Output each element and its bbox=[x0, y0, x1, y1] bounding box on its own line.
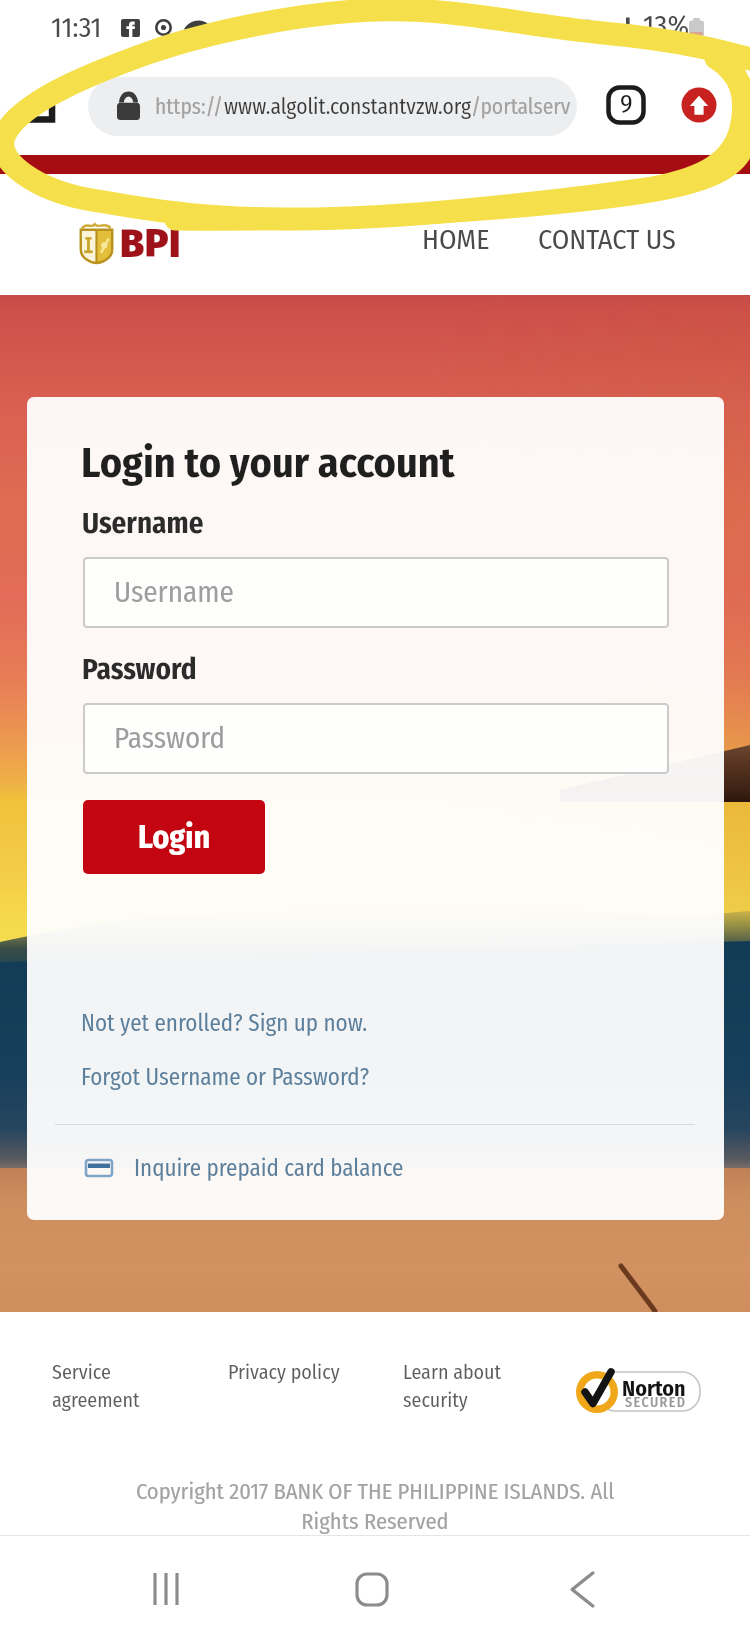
staticText: Username bbox=[114, 575, 234, 610]
button[interactable]: Forgot Username or Password? bbox=[81, 1063, 370, 1091]
button[interactable]: Recents bbox=[116, 1559, 216, 1619]
staticText: BPI bbox=[120, 221, 181, 268]
button[interactable]: Password bbox=[83, 703, 669, 774]
staticText: 13% bbox=[643, 9, 690, 44]
button[interactable]: Norton Secured bbox=[576, 1368, 702, 1416]
staticText: 11:31 bbox=[51, 11, 102, 45]
staticText: Not yet enrolled? Sign up now. bbox=[81, 1009, 368, 1037]
button[interactable]: Home bbox=[322, 1559, 422, 1619]
button[interactable]: Not yet enrolled? Sign up now. bbox=[81, 1009, 368, 1037]
other: Back bbox=[21, 94, 53, 126]
button[interactable]: Inquire prepaid card balance bbox=[86, 1154, 404, 1182]
staticText: 9 bbox=[620, 89, 633, 120]
staticText: https:// bbox=[155, 94, 224, 120]
staticText: Learn about security bbox=[403, 1360, 502, 1412]
button[interactable]: Login bbox=[83, 800, 265, 874]
staticText: Inquire prepaid card balance bbox=[134, 1154, 404, 1182]
button[interactable]: Learn about security bbox=[403, 1360, 502, 1412]
button[interactable]: CONTACT US bbox=[528, 217, 686, 263]
button[interactable]: Service agreement bbox=[52, 1360, 140, 1412]
staticText: HOME bbox=[422, 223, 490, 257]
button[interactable]: HOME bbox=[412, 217, 500, 263]
staticText: Privacy policy bbox=[228, 1360, 340, 1384]
button[interactable]: Username bbox=[83, 557, 669, 628]
staticText: Login to your account bbox=[81, 438, 455, 488]
staticText: Username bbox=[82, 506, 204, 541]
staticText: www.algolit.constantvzw.org bbox=[224, 94, 471, 120]
button[interactable]: Privacy policy bbox=[228, 1360, 340, 1384]
staticText: Service agreement bbox=[52, 1360, 140, 1412]
staticText: Norton bbox=[622, 1375, 686, 1401]
button[interactable]: Opera menu bbox=[676, 82, 722, 128]
button[interactable]: Tabs bbox=[603, 82, 649, 128]
staticText: /portalserv bbox=[471, 94, 571, 120]
staticText: Copyright 2017 BANK OF THE PHILIPPINE IS… bbox=[0, 1478, 750, 1535]
staticText: Password bbox=[114, 721, 226, 756]
button[interactable]: https:// bbox=[88, 77, 577, 136]
staticText: SECURED bbox=[625, 1394, 687, 1411]
staticText: Password bbox=[82, 652, 197, 687]
staticText: Login bbox=[138, 818, 211, 856]
staticText: CONTACT US bbox=[538, 223, 676, 257]
staticText: Forgot Username or Password? bbox=[81, 1063, 370, 1091]
button[interactable]: Back bbox=[532, 1559, 632, 1619]
